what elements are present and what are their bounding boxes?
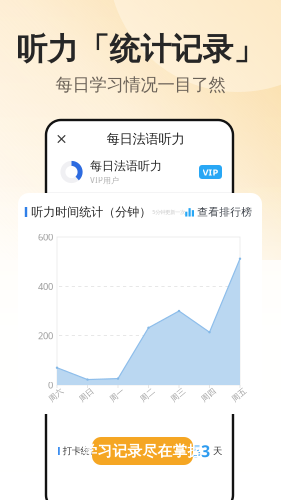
staticText: 周六 xyxy=(48,390,64,400)
staticText: 周日 xyxy=(78,390,94,400)
staticText: 每日学习情况一目了然 xyxy=(55,74,225,95)
staticText: 周二 xyxy=(139,390,155,400)
button[interactable]: 查看排行榜 xyxy=(185,205,252,218)
staticText: 周三 xyxy=(170,390,186,400)
staticText: 0 xyxy=(48,379,53,391)
staticText: 打卡统计 xyxy=(60,445,99,457)
staticText: 5分钟更新一次 xyxy=(151,208,185,216)
staticText: 打卡 xyxy=(171,445,192,457)
staticText: 听力时间统计（分钟） xyxy=(27,205,151,219)
staticText: 周一 xyxy=(109,390,125,400)
staticText: 学习记录尽在掌握 xyxy=(82,442,202,460)
staticText: 200 xyxy=(38,329,53,342)
button[interactable]: Close xyxy=(52,129,71,148)
staticText: 周四 xyxy=(200,390,216,400)
staticText: 600 xyxy=(38,231,53,243)
staticText: VIP用户 xyxy=(90,175,119,185)
button[interactable]: 每日法语听力 xyxy=(46,152,233,192)
staticText: 天 xyxy=(210,445,222,457)
staticText: 听力「统计记录」 xyxy=(16,30,264,68)
staticText: VIP xyxy=(202,166,218,178)
staticText: 400 xyxy=(38,280,53,292)
staticText: 每日法语听力 xyxy=(90,158,162,173)
staticText: 查看排行榜 xyxy=(197,205,252,218)
staticText: 53 xyxy=(192,440,210,462)
staticText: 周五 xyxy=(231,390,247,400)
staticText: 每日法语听力 xyxy=(106,131,184,147)
